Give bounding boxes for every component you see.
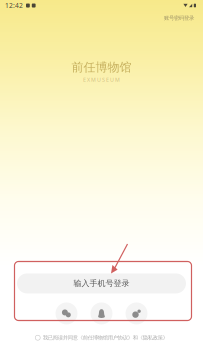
staticText: 账号密码登录: [164, 15, 194, 21]
button[interactable]: Agree to terms: [35, 335, 40, 340]
staticText: 输入手机号登录: [73, 278, 129, 288]
button[interactable]: 输入手机号登录: [17, 273, 186, 293]
staticText: 我已阅读并同意《前任博物馆用户协议》和《隐私政策》: [43, 334, 168, 341]
button[interactable]: 账号密码登录: [155, 11, 203, 25]
button[interactable]: Sign in with WeChat: [55, 302, 77, 324]
staticText: 前任博物馆: [71, 60, 131, 75]
staticText: E X M U S E U M: [83, 76, 120, 83]
button[interactable]: Sign in with Weibo: [125, 302, 147, 324]
button[interactable]: Sign in with QQ: [90, 302, 112, 324]
staticText: 12:42: [5, 1, 23, 10]
